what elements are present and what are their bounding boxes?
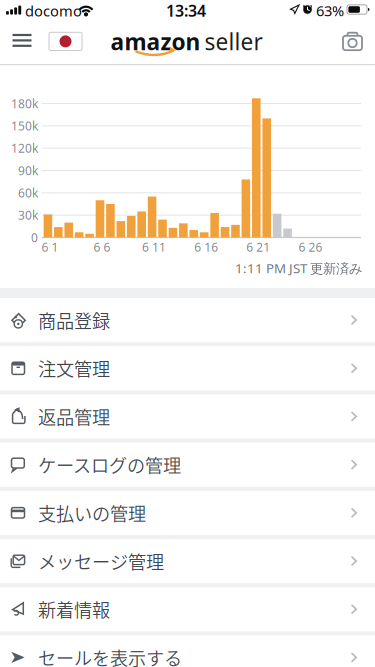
staticText: 6 21 [246, 239, 270, 255]
staticText: seller [204, 26, 262, 56]
staticText: 1:11 PM JST 更新済み [235, 259, 363, 277]
staticText: 0 [31, 229, 38, 245]
staticText: 150k [11, 118, 38, 134]
staticText: メッセージ管理 [38, 548, 164, 574]
staticText: 6 6 [93, 239, 110, 255]
staticText: 180k [11, 95, 38, 111]
staticText: 新着情報 [38, 596, 110, 622]
staticText: amazon [110, 26, 200, 56]
staticText: 6 1 [41, 239, 58, 255]
staticText: docomo [25, 1, 82, 21]
staticText: 商品登録 [38, 307, 110, 333]
staticText: 30k [18, 207, 38, 223]
staticText: ケースログの管理 [38, 451, 181, 478]
staticText: 60k [18, 185, 38, 201]
staticText: 120k [11, 140, 38, 156]
staticText: 6 26 [298, 239, 322, 255]
staticText: 支払いの管理 [38, 500, 146, 526]
staticText: 6 11 [142, 239, 166, 255]
staticText: 13:34 [166, 0, 206, 21]
staticText: 63% [316, 1, 344, 20]
staticText: 90k [18, 162, 38, 178]
staticText: 6 16 [194, 239, 218, 255]
staticText: 注文管理 [38, 355, 110, 381]
staticText: 返品管理 [38, 403, 110, 430]
staticText: セールを表示する [38, 644, 182, 667]
